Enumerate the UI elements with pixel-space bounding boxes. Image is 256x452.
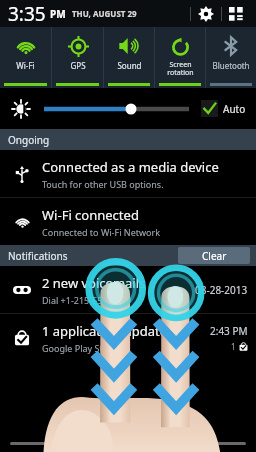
staticText: Connected as a media device: [42, 158, 219, 176]
staticText: Clear: [202, 249, 227, 263]
staticText: GPS: [70, 60, 86, 71]
button[interactable]: Sound: [104, 27, 154, 88]
button[interactable]: Screen rotation: [155, 27, 205, 88]
button[interactable]: GPS: [52, 27, 103, 88]
staticText: PM: [50, 7, 66, 21]
staticText: Auto: [223, 102, 246, 116]
staticText: Bluetooth: [212, 60, 250, 71]
staticText: 1 application update: [42, 322, 168, 340]
staticText: THU, AUGUST 29: [72, 8, 137, 19]
staticText: Touch for other USB options.: [42, 178, 164, 190]
staticText: Ongoing: [8, 133, 50, 147]
staticText: 3:35: [8, 1, 46, 27]
button[interactable]: Clear: [178, 247, 250, 264]
staticText: 1: [231, 341, 236, 352]
button[interactable]: 2 new voicemails: [0, 266, 256, 313]
button[interactable]: Auto: [201, 100, 246, 117]
staticText: Sound: [117, 60, 142, 71]
staticText: Google Play Store: [42, 342, 117, 354]
button[interactable]: Quick settings grid: [222, 0, 250, 27]
staticText: Dial +1-215-555-0199: [42, 294, 132, 306]
staticText: Wi-Fi: [16, 60, 35, 71]
button[interactable]: [44, 98, 189, 120]
staticText: Connected to Wi-Fi Network: [42, 226, 161, 238]
button[interactable]: Connected as a media device: [0, 150, 256, 197]
staticText: 2 new voicemails: [42, 274, 146, 292]
button[interactable]: Wi-Fi: [0, 27, 51, 88]
button[interactable]: [0, 434, 256, 452]
staticText: 08-28-2013: [195, 283, 248, 297]
button[interactable]: Wi-Fi connected: [0, 198, 256, 245]
staticText: Notifications: [8, 249, 68, 263]
button[interactable]: Settings: [191, 0, 221, 27]
staticText: Screen rotation: [167, 60, 194, 77]
staticText: 2:43 PM: [210, 324, 248, 338]
button[interactable]: 1 application update: [0, 314, 256, 361]
button[interactable]: Bluetooth: [206, 27, 256, 88]
staticText: Wi-Fi connected: [42, 206, 139, 224]
